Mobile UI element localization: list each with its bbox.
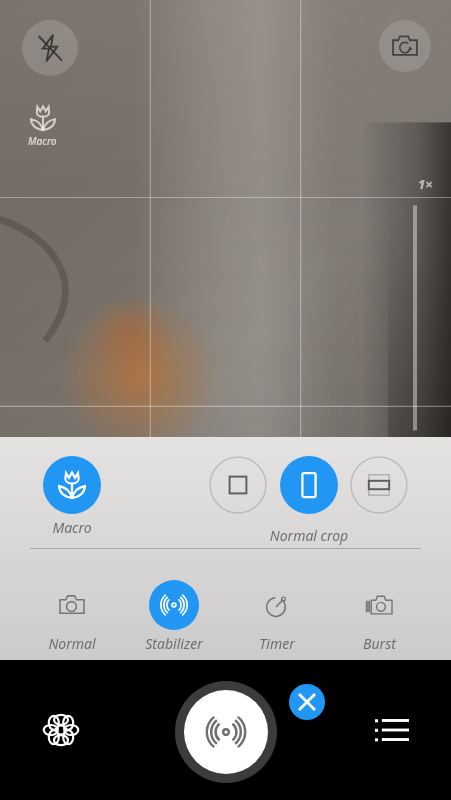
button[interactable]: Switch camera [379, 20, 431, 72]
staticText: Macro [28, 134, 57, 148]
staticText: 1× [418, 175, 433, 193]
button[interactable]: Normal crop selected [280, 456, 338, 514]
button[interactable]: Macro [17, 456, 127, 537]
staticText: Stabilizer [145, 634, 203, 653]
button[interactable]: Shutter [175, 681, 277, 783]
button[interactable]: Close [289, 684, 325, 720]
button[interactable]: Crop option [209, 456, 267, 514]
button[interactable]: Normal [17, 580, 127, 653]
button[interactable]: Flash off [22, 20, 78, 76]
staticText: Normal crop [229, 526, 389, 545]
button[interactable]: Burst [324, 580, 434, 653]
button[interactable]: Stabilizer [119, 580, 229, 653]
button[interactable]: Filters [36, 705, 86, 755]
button[interactable]: Macro mode active [28, 104, 57, 148]
staticText: Burst [363, 634, 396, 653]
button[interactable]: Settings list [367, 705, 417, 755]
staticText: Timer [259, 634, 295, 653]
button[interactable]: Crop option [350, 456, 408, 514]
staticText: Macro [52, 518, 92, 537]
staticText: Normal [48, 634, 96, 653]
button[interactable]: Timer [222, 580, 332, 653]
